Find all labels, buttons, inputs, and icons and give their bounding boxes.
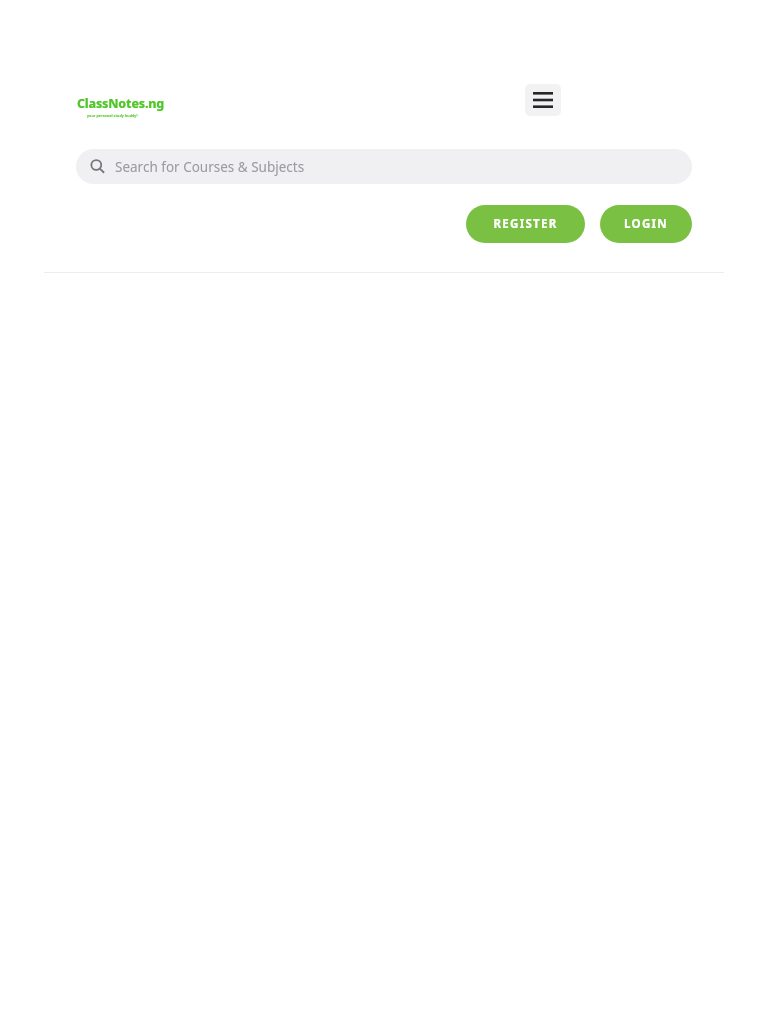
staticText: ClassNotes.ng [77, 95, 165, 112]
button[interactable]: REGISTER [466, 205, 585, 243]
button[interactable]: ClassNotes.ng [76, 94, 166, 119]
staticText: LOGIN [624, 216, 668, 232]
button[interactable]: Open navigation menu [525, 84, 561, 116]
staticText: Search for Courses & Subjects [115, 158, 305, 176]
staticText: REGISTER [493, 216, 558, 232]
staticText: your personal study buddy! [87, 113, 138, 118]
button[interactable]: Search for Courses & Subjects [76, 149, 692, 184]
button[interactable]: LOGIN [600, 205, 692, 243]
